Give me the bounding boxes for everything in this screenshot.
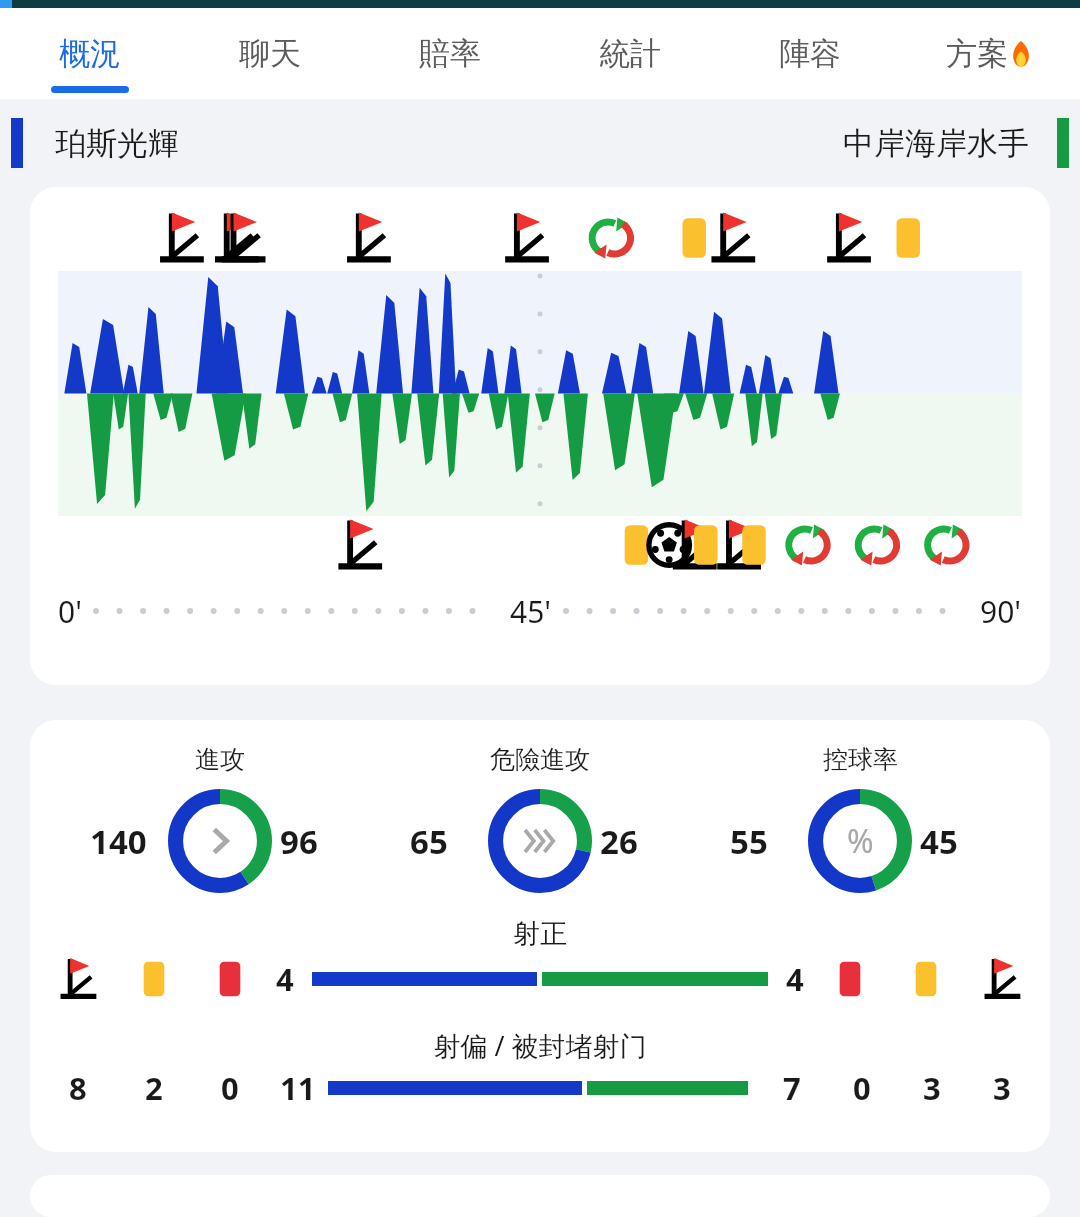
staticText: 11	[280, 1067, 316, 1109]
staticText: 統計	[599, 34, 661, 73]
staticText: 65	[410, 819, 488, 864]
staticText: 45'	[510, 591, 552, 632]
staticText: 3	[923, 1067, 941, 1109]
staticText: 0'	[58, 591, 82, 632]
staticText: 8	[69, 1067, 87, 1109]
button[interactable]: 0'	[30, 187, 1050, 685]
staticText: 45	[920, 819, 990, 864]
staticText: 方案	[946, 34, 1008, 73]
button[interactable]: 方案	[900, 8, 1080, 99]
staticText: 陣容	[779, 34, 841, 73]
staticText: 中岸海岸水手	[843, 124, 1029, 163]
staticText: 90'	[980, 591, 1022, 632]
staticText: 96	[280, 819, 350, 864]
staticText: 危險進攻	[490, 744, 590, 775]
staticText: 7	[783, 1067, 801, 1109]
staticText: 55	[730, 819, 808, 864]
staticText: 進攻	[195, 744, 245, 775]
button[interactable]: 陣容	[720, 8, 900, 99]
staticText: 珀斯光輝	[55, 124, 179, 163]
staticText: 4	[276, 958, 294, 1000]
staticText: 2	[145, 1067, 163, 1109]
button[interactable]: 概況	[0, 8, 180, 99]
staticText: %	[847, 819, 874, 863]
button[interactable]: 進攻	[30, 720, 1050, 1152]
staticText: 26	[600, 819, 670, 864]
staticText: 0	[221, 1067, 239, 1109]
staticText: 4	[786, 958, 804, 1000]
staticText: 3	[993, 1067, 1011, 1109]
staticText: 0	[853, 1067, 871, 1109]
staticText: 概況	[59, 34, 121, 73]
button[interactable]: 賠率	[360, 8, 540, 99]
button[interactable]: 聊天	[180, 8, 360, 99]
staticText: 控球率	[823, 744, 898, 775]
staticText: 140	[90, 819, 168, 864]
staticText: 射偏 / 被封堵射门	[30, 1027, 1050, 1064]
staticText: 射正	[30, 917, 1050, 951]
staticText: 賠率	[419, 34, 481, 73]
button[interactable]: 統計	[540, 8, 720, 99]
staticText: 聊天	[239, 34, 301, 73]
